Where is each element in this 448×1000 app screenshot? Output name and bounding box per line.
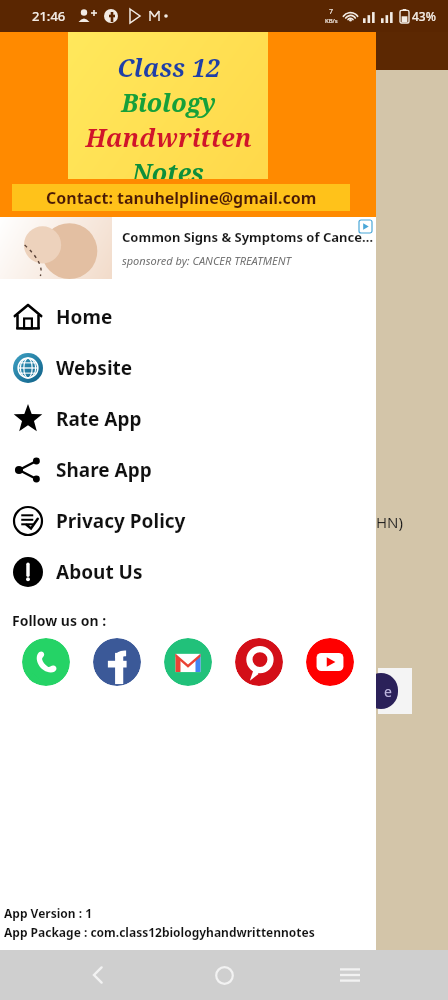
staticText: Privacy Policy	[56, 508, 186, 534]
staticText: Biology	[121, 85, 216, 119]
button[interactable]: YouTube	[306, 638, 354, 686]
staticText: App Package : com.class12biologyhandwrit…	[4, 924, 315, 940]
button[interactable]: Home	[0, 291, 376, 342]
staticText: Contact: tanuhelpline@gmail.com	[46, 187, 317, 209]
staticText: Common Signs & Symptoms of Cance…	[122, 228, 374, 246]
staticText: Class 12	[117, 50, 220, 84]
button[interactable]: Facebook	[93, 638, 141, 686]
button[interactable]: Pinterest	[235, 638, 283, 686]
staticText: Website	[56, 355, 133, 381]
staticText: e	[384, 682, 392, 701]
staticText: Follow us on :	[12, 611, 107, 630]
staticText: 21:46	[32, 7, 66, 25]
staticText: HN)	[376, 512, 404, 532]
button[interactable]: About Us	[0, 546, 376, 597]
button[interactable]: Rate App	[0, 393, 376, 444]
button[interactable]: Website	[0, 342, 376, 393]
button[interactable]: Common Signs & Symptoms of Cance…	[0, 217, 376, 279]
button[interactable]: Gmail	[164, 638, 212, 686]
button[interactable]: Privacy Policy	[0, 495, 376, 546]
staticText: Home	[56, 304, 113, 330]
staticText: Share App	[56, 457, 152, 483]
staticText: App Version : 1	[4, 905, 93, 921]
staticText: 43%	[412, 8, 436, 24]
button[interactable]: Home	[196, 950, 252, 1000]
staticText: 7	[329, 7, 334, 17]
button[interactable]: Share App	[0, 444, 376, 495]
staticText: sponsored by: CANCER TREATMENT	[122, 253, 291, 268]
staticText: KB/s	[325, 17, 338, 25]
button[interactable]: WhatsApp	[22, 638, 70, 686]
button[interactable]: Back	[70, 950, 126, 1000]
staticText: About Us	[56, 559, 143, 585]
button[interactable]: Recent apps	[322, 950, 378, 1000]
staticText: Handwritten	[85, 120, 252, 154]
staticText: Rate App	[56, 406, 142, 432]
staticText: Notes	[132, 155, 204, 179]
